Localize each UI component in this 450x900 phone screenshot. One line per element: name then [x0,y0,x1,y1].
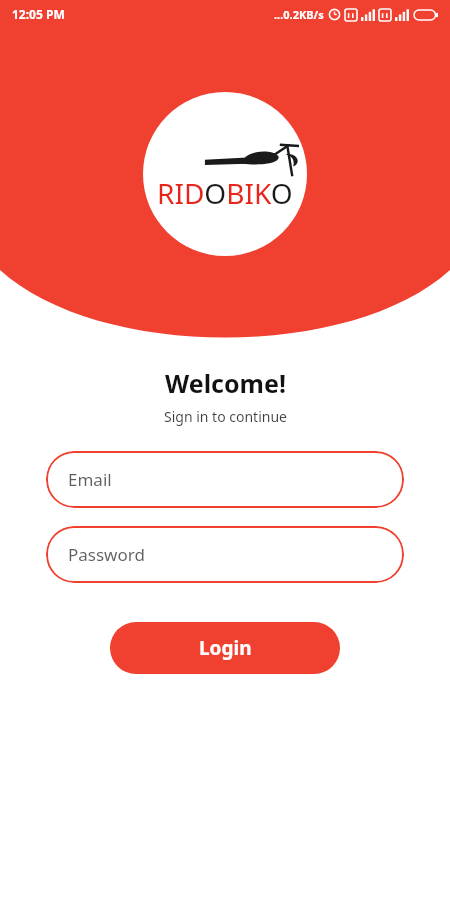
staticText: Welcome! [165,366,286,400]
staticText: Password [68,543,145,566]
staticText: Sign in to continue [164,407,287,426]
staticText: Login [199,635,252,661]
staticText: 12:05 PM [12,6,65,22]
staticText: ...0.2KB/s [274,7,324,22]
button[interactable]: Login [110,622,340,674]
button[interactable]: Email [46,451,404,508]
staticText: Email [68,468,112,491]
button[interactable]: Password [46,526,404,583]
staticText: RIDOBIKO [157,174,293,212]
